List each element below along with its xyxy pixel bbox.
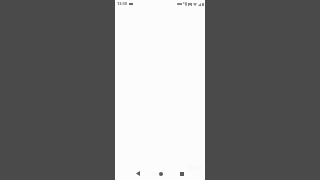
button[interactable]: Recent apps <box>176 168 187 179</box>
button[interactable]: Back <box>132 168 143 179</box>
staticText: 13:30 <box>117 1 127 6</box>
button[interactable]: Home <box>155 168 166 179</box>
